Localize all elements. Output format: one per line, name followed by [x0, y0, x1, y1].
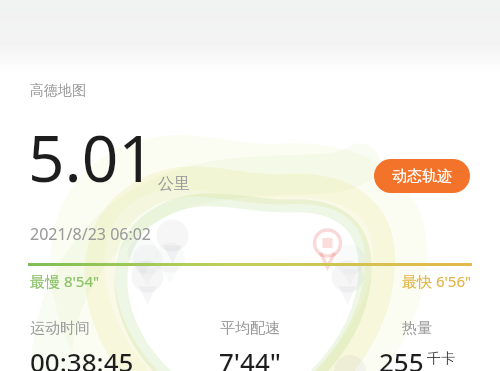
staticText: 高德地图: [30, 82, 86, 100]
staticText: 最快 6'56": [402, 271, 472, 291]
staticText: 7'44": [219, 344, 281, 371]
staticText: 最慢 8'54": [30, 271, 100, 291]
staticText: 公里: [158, 174, 190, 194]
staticText: 2021/8/23 06:02: [30, 223, 152, 245]
button[interactable]: 动态轨迹: [374, 159, 470, 193]
button[interactable]: 热量: [333, 319, 500, 371]
staticText: 热量: [402, 319, 432, 338]
staticText: 动态轨迹: [392, 167, 452, 186]
staticText: 千卡: [427, 350, 455, 368]
staticText: 运动时间: [30, 319, 90, 338]
staticText: 平均配速: [220, 319, 280, 338]
button[interactable]: 平均配速: [166, 319, 333, 371]
staticText: 5.01: [28, 114, 155, 201]
staticText: 255: [379, 344, 424, 371]
button[interactable]: 运动时间: [0, 319, 166, 371]
staticText: 00:38:45: [30, 344, 134, 371]
